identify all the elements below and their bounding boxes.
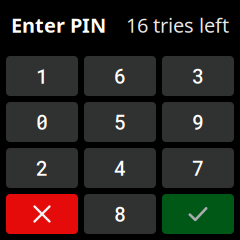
button[interactable]: 9 bbox=[162, 102, 234, 142]
button[interactable]: 0 bbox=[6, 102, 78, 142]
staticText: 9 bbox=[192, 109, 204, 135]
staticText: 7 bbox=[192, 155, 204, 181]
staticText: 8 bbox=[114, 201, 126, 227]
button[interactable]: 8 bbox=[84, 194, 156, 234]
staticText: 3 bbox=[192, 63, 204, 89]
staticText: 4 bbox=[114, 155, 126, 181]
staticText: 1 bbox=[36, 63, 48, 89]
staticText: 16 tries left bbox=[126, 12, 229, 38]
button[interactable]: 2 bbox=[6, 148, 78, 188]
staticText: 2 bbox=[36, 155, 48, 181]
button[interactable]: Cancel bbox=[6, 194, 78, 234]
button[interactable]: 6 bbox=[84, 56, 156, 96]
button[interactable]: 3 bbox=[162, 56, 234, 96]
button[interactable]: 7 bbox=[162, 148, 234, 188]
staticText: Enter PIN bbox=[11, 12, 106, 38]
button[interactable]: Confirm bbox=[162, 194, 234, 234]
staticText: 6 bbox=[114, 63, 126, 89]
button[interactable]: 5 bbox=[84, 102, 156, 142]
button[interactable]: 4 bbox=[84, 148, 156, 188]
staticText: 0 bbox=[36, 109, 48, 135]
button[interactable]: 1 bbox=[6, 56, 78, 96]
staticText: 5 bbox=[114, 109, 126, 135]
